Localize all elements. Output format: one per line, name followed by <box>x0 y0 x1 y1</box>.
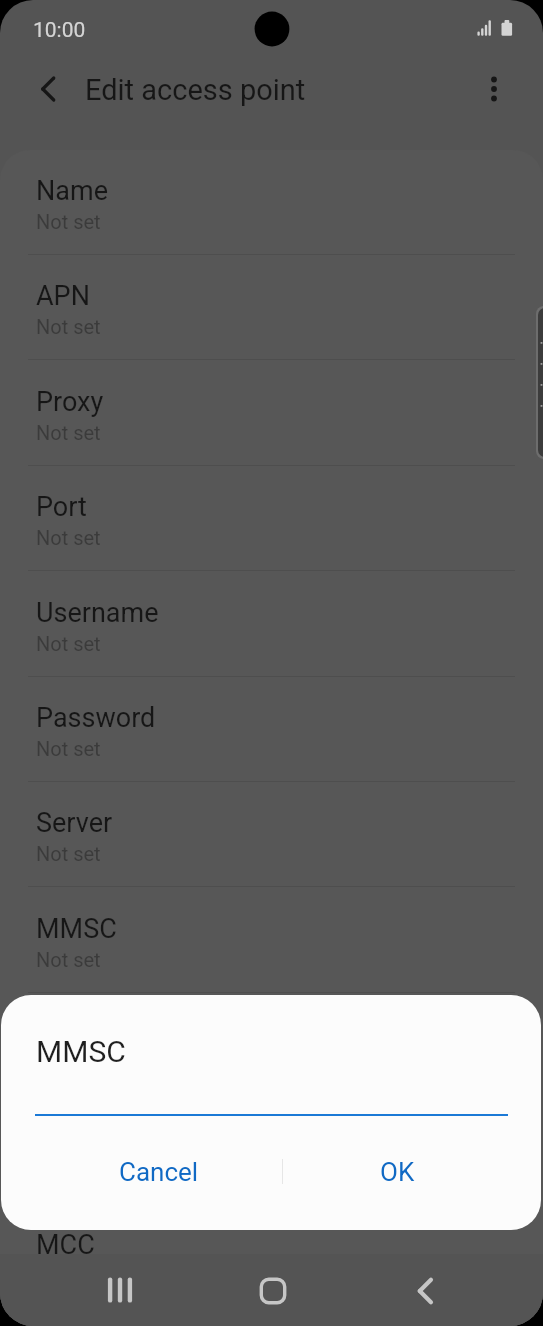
button[interactable]: Password <box>0 677 543 782</box>
staticText: APN <box>36 280 90 312</box>
staticText: Not set <box>36 526 101 549</box>
button[interactable]: MCC <box>0 1204 543 1309</box>
button[interactable]: Proxy <box>0 361 543 466</box>
staticText: Not set <box>36 315 101 338</box>
staticText: Password <box>36 702 156 734</box>
staticText: Port <box>36 491 87 523</box>
button[interactable]: Recents <box>96 1266 144 1314</box>
staticText: MMS proxy <box>36 1018 172 1050</box>
staticText: MMSC <box>36 1034 126 1069</box>
staticText: Proxy <box>36 386 104 418</box>
button[interactable]: Back <box>400 1266 448 1314</box>
button[interactable]: Name <box>0 150 543 255</box>
staticText: Not set <box>36 948 101 971</box>
staticText: 10:00 <box>33 18 86 43</box>
button[interactable]: MMS port <box>0 1099 543 1204</box>
button[interactable]: Home <box>248 1266 296 1314</box>
button[interactable]: APN <box>0 255 543 360</box>
staticText: Server <box>36 807 113 839</box>
staticText: Not set <box>36 737 101 760</box>
staticText: MCC <box>36 1229 95 1261</box>
staticText: Edit access point <box>85 73 306 107</box>
staticText: Not set <box>36 842 101 865</box>
button[interactable]: OK <box>285 1142 509 1202</box>
button[interactable]: MMSC <box>0 888 543 993</box>
button[interactable]: Port <box>0 466 543 571</box>
staticText: OK <box>380 1157 415 1187</box>
button[interactable]: Server <box>0 782 543 887</box>
staticText: Not set <box>36 210 101 233</box>
staticText: Not set <box>36 632 101 655</box>
staticText: MMSC <box>36 913 117 945</box>
staticText: Not set <box>36 421 101 444</box>
staticText: Cancel <box>119 1157 199 1187</box>
button[interactable]: Username <box>0 572 543 677</box>
staticText: Username <box>36 597 159 629</box>
staticText: Name <box>36 175 108 207</box>
button[interactable]: Cancel <box>47 1142 271 1202</box>
button[interactable]: More options <box>470 65 518 113</box>
button[interactable]: Navigate up <box>22 64 72 114</box>
button[interactable]: MMS proxy <box>0 993 543 1098</box>
staticText: Not set <box>36 1053 101 1076</box>
